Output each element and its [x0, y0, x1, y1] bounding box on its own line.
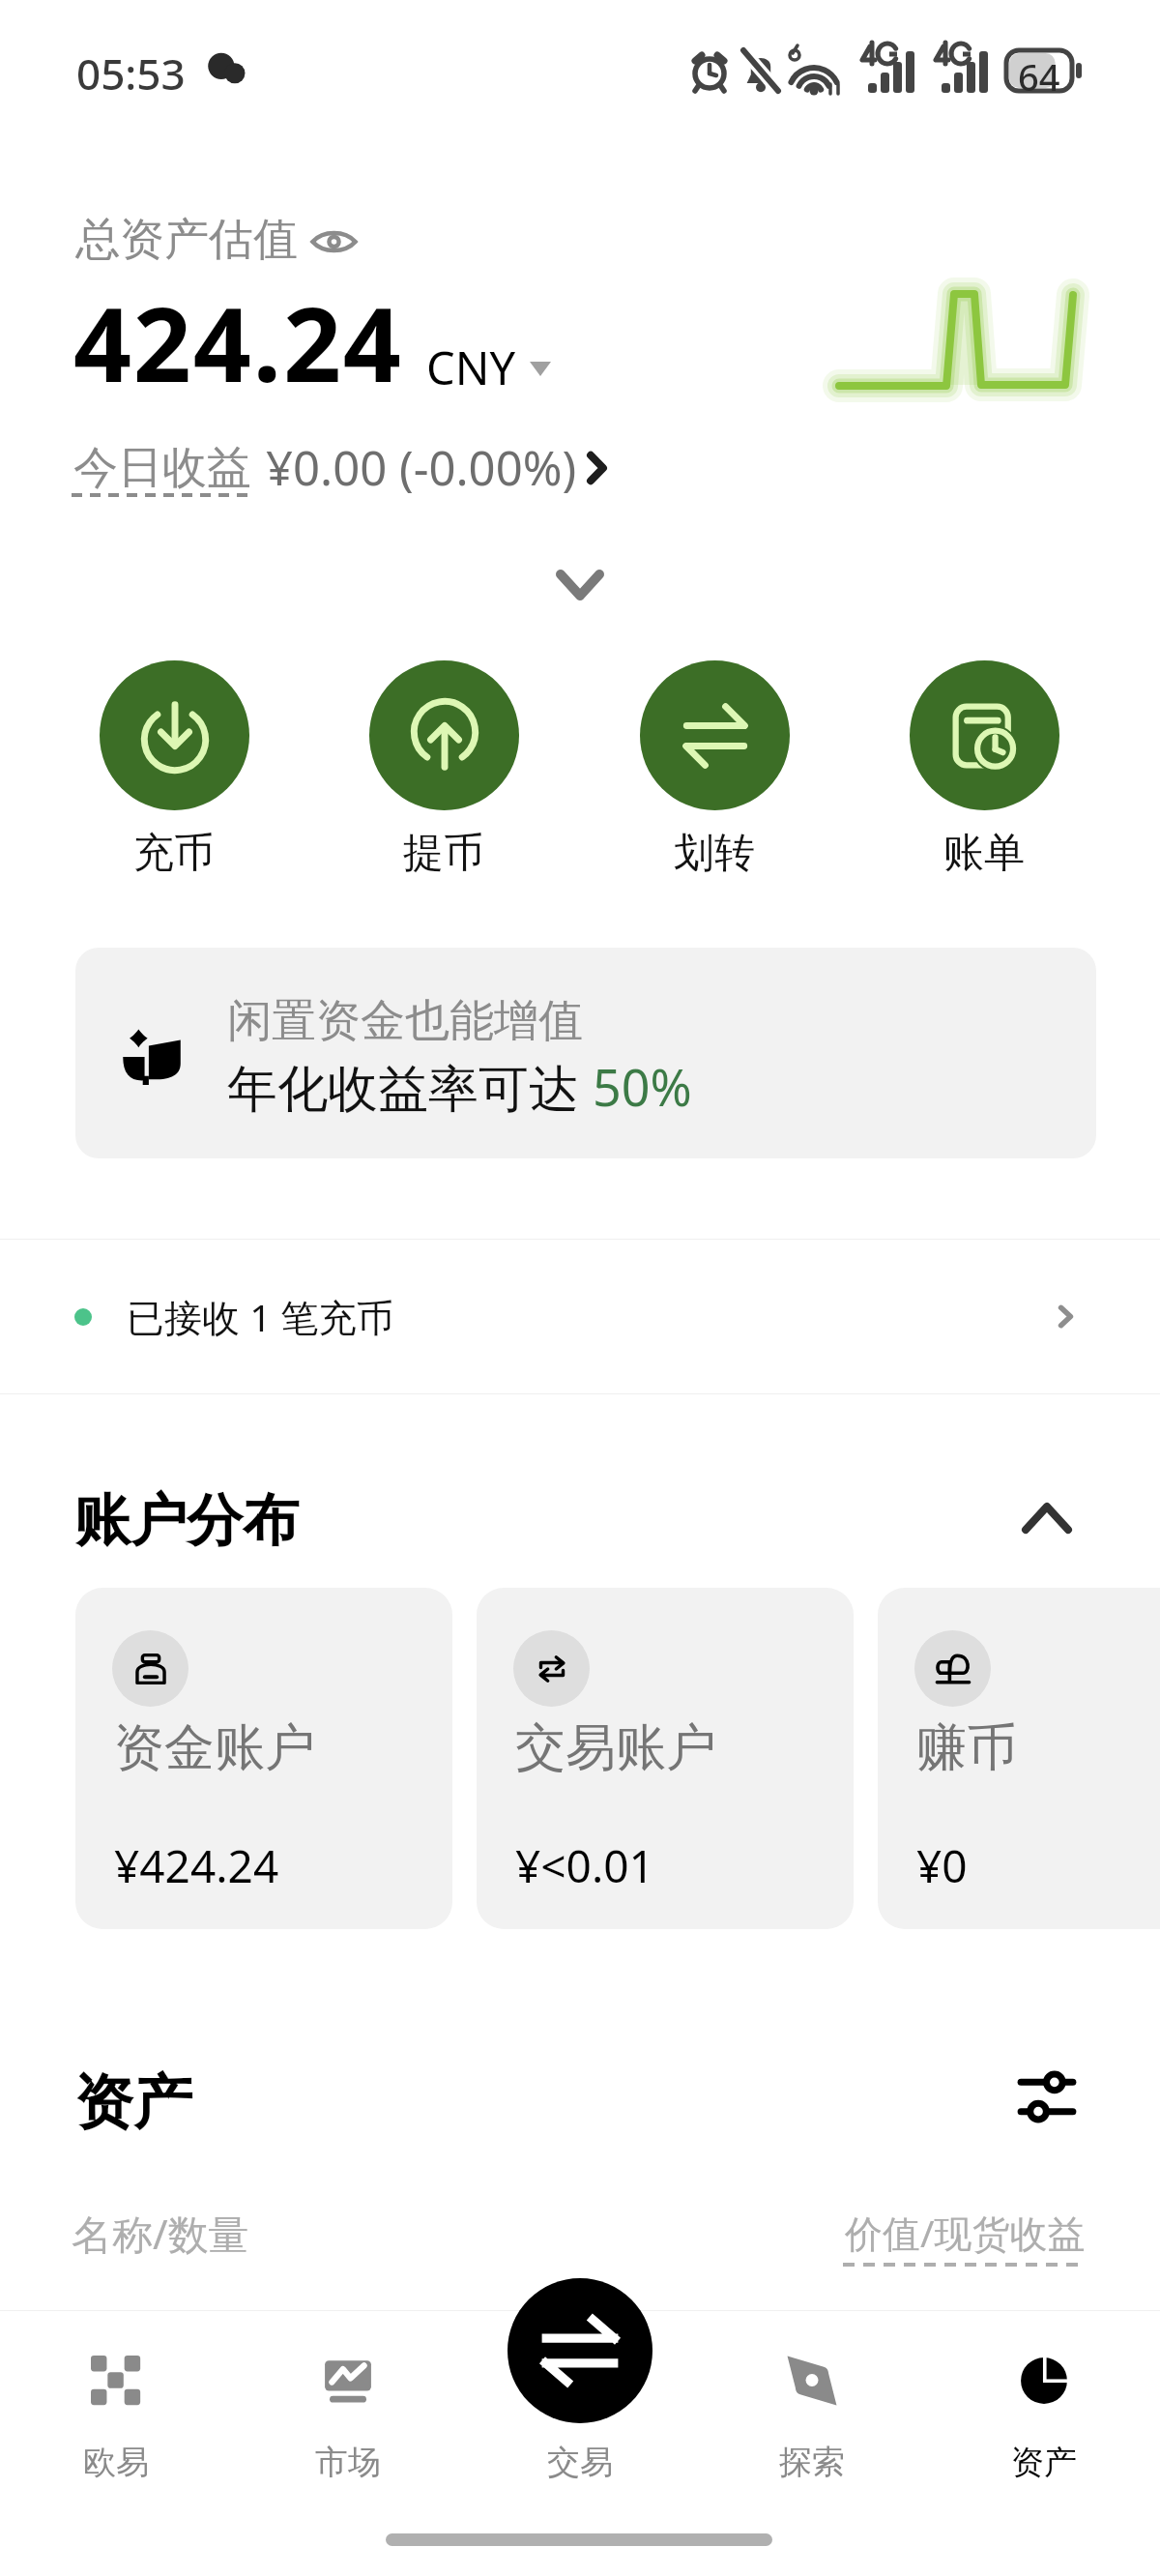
button[interactable]: 闲置资金也能增值 [75, 948, 1096, 1158]
staticText: 总资产估值 [75, 212, 298, 268]
staticText: 今日收益 [73, 440, 251, 496]
staticText: ¥<0.01 [515, 1835, 654, 1896]
staticText: 交易账户 [515, 1716, 716, 1780]
button[interactable]: 探索 [696, 2311, 928, 2504]
staticText: 年化收益率可达 [227, 1052, 593, 1121]
button[interactable]: 交易账户 [477, 1588, 854, 1929]
staticText: 424.24 [73, 274, 403, 412]
button[interactable]: 已接收 1 笔充币 [0, 1240, 1160, 1393]
button[interactable]: Filter [1005, 2060, 1088, 2133]
staticText: 资产 [1011, 2442, 1077, 2483]
button[interactable]: 提币 [347, 660, 540, 879]
staticText: ¥424.24 [114, 1835, 279, 1896]
staticText: 闲置资金也能增值 [227, 993, 583, 1049]
staticText: 赚币 [916, 1716, 1017, 1780]
staticText: 提币 [403, 828, 484, 879]
button[interactable]: 交易 [464, 2311, 696, 2504]
staticText: CNY [426, 337, 516, 398]
staticText: 欧易 [83, 2442, 149, 2483]
button[interactable]: 划转 [618, 660, 811, 879]
staticText: ¥0 [916, 1835, 968, 1896]
staticText: 账单 [943, 828, 1025, 879]
staticText: 已接收 1 笔充币 [127, 1291, 394, 1342]
button[interactable]: 欧易 [0, 2311, 232, 2504]
staticText: 账户分布 [74, 1485, 299, 1556]
staticText: 划转 [674, 828, 755, 879]
button[interactable]: Expand [522, 551, 638, 619]
button[interactable]: 资金账户 [75, 1588, 452, 1929]
staticText: 探索 [779, 2442, 845, 2483]
button[interactable]: 市场 [232, 2311, 464, 2504]
staticText: 资产 [74, 2065, 192, 2140]
staticText: 50% [593, 1052, 692, 1121]
button[interactable]: 赚币 [878, 1588, 1160, 1929]
button[interactable]: Hide balance [68, 205, 377, 267]
staticText: 交易 [547, 2442, 613, 2483]
button[interactable]: Collapse [1007, 1481, 1087, 1555]
button[interactable]: 今日收益 [73, 435, 605, 500]
staticText: 市场 [315, 2442, 381, 2483]
staticText: 名称/数量 [72, 2206, 249, 2261]
staticText: 05:53 [76, 44, 186, 102]
staticText: 价值/现货收益 [845, 2207, 1086, 2258]
staticText: 充币 [133, 828, 215, 879]
button[interactable]: 账单 [887, 660, 1081, 879]
staticText: 64 [1018, 51, 1060, 102]
staticText: ¥0.00 (-0.00%) [266, 435, 577, 500]
button[interactable]: Trade [507, 2278, 652, 2423]
staticText: 资金账户 [114, 1716, 315, 1780]
button[interactable]: 资产 [928, 2311, 1160, 2504]
button[interactable]: 充币 [77, 660, 271, 879]
